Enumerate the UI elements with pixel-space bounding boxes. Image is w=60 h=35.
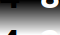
staticText: 44 — [0, 0, 20, 35]
staticText: 82 — [40, 0, 60, 35]
